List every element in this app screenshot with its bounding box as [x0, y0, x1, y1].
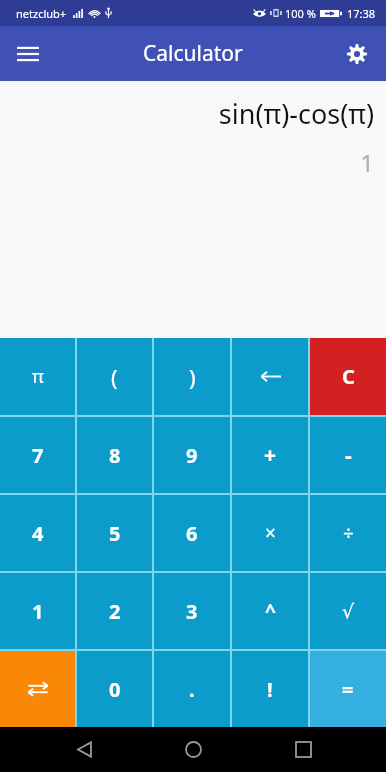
button[interactable]: π — [0, 338, 75, 415]
button[interactable]: . — [154, 651, 230, 727]
button[interactable]: Menu — [4, 30, 52, 78]
staticText: ÷ — [343, 520, 354, 546]
button[interactable]: Recent apps — [277, 727, 329, 772]
staticText: 3 — [186, 598, 198, 625]
staticText: . — [189, 676, 195, 703]
staticText: 7 — [32, 442, 44, 469]
button[interactable]: Settings — [334, 31, 380, 77]
button[interactable]: Home — [167, 727, 219, 772]
button[interactable]: = — [310, 651, 386, 727]
button[interactable]: 4 — [0, 495, 75, 571]
staticText: 8 — [109, 442, 121, 469]
button[interactable]: 0 — [77, 651, 152, 727]
button[interactable]: ) — [154, 338, 230, 415]
staticText: netzclub+ — [16, 6, 67, 21]
staticText: 1 — [360, 146, 374, 179]
button[interactable]: + — [232, 417, 308, 493]
button[interactable]: √ — [310, 573, 386, 649]
button[interactable]: ^ — [232, 573, 308, 649]
staticText: Calculator — [143, 39, 243, 68]
button[interactable]: Back — [58, 727, 110, 772]
button[interactable]: ! — [232, 651, 308, 727]
staticText: + — [264, 441, 277, 470]
button[interactable]: 2 — [77, 573, 152, 649]
staticText: 5 — [109, 520, 121, 547]
staticText: ^ — [265, 598, 276, 624]
button[interactable]: × — [232, 495, 308, 571]
button[interactable]: 6 — [154, 495, 230, 571]
button[interactable]: 9 — [154, 417, 230, 493]
button[interactable]: - — [310, 417, 386, 493]
button[interactable]: C — [310, 338, 386, 415]
staticText: √ — [342, 600, 355, 622]
staticText: ) — [189, 362, 196, 392]
staticText: 6 — [186, 520, 198, 547]
button[interactable]: ÷ — [310, 495, 386, 571]
staticText: 4 — [32, 520, 44, 547]
button[interactable]: 7 — [0, 417, 75, 493]
staticText: - — [345, 441, 352, 470]
button[interactable]: 1 — [0, 573, 75, 649]
button[interactable]: Swap — [0, 651, 75, 727]
staticText: 9 — [186, 442, 198, 469]
staticText: ( — [111, 362, 118, 392]
button[interactable]: 3 — [154, 573, 230, 649]
button[interactable]: 8 — [77, 417, 152, 493]
button[interactable]: Backspace — [232, 338, 308, 415]
button[interactable]: 5 — [77, 495, 152, 571]
staticText: 1 — [32, 598, 44, 625]
staticText: π — [32, 364, 44, 389]
staticText: 0 — [109, 676, 121, 703]
staticText: 100 % — [285, 6, 316, 21]
staticText: 17:38 — [347, 6, 376, 21]
staticText: C — [342, 363, 355, 390]
staticText: 2 — [109, 598, 121, 625]
staticText: sin(π)-cos(π) — [218, 95, 374, 132]
button[interactable]: ( — [77, 338, 152, 415]
staticText: × — [265, 520, 276, 546]
staticText: ! — [267, 676, 273, 703]
staticText: = — [342, 676, 354, 703]
